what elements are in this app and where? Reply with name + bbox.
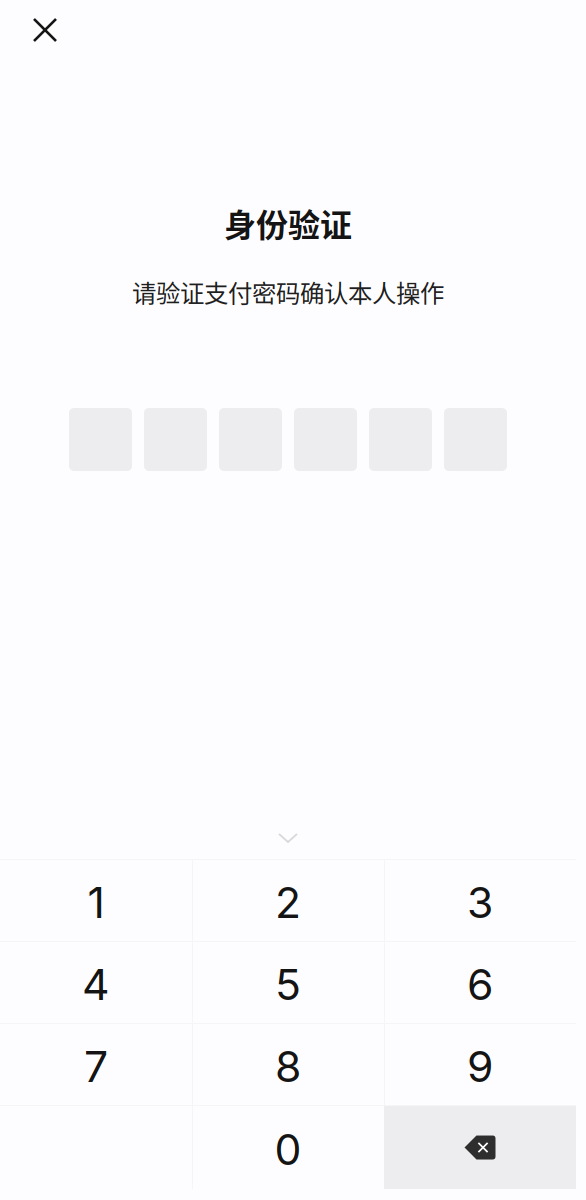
button[interactable]: 6	[384, 942, 576, 1023]
button[interactable]: 7	[0, 1024, 192, 1105]
staticText: 身份验证	[224, 200, 352, 246]
staticText: 5	[275, 959, 301, 1010]
staticText: 6	[467, 959, 493, 1010]
staticText: 1	[87, 877, 104, 928]
button[interactable]: 9	[384, 1024, 576, 1105]
button[interactable]: 3	[384, 860, 576, 941]
button[interactable]: 1	[0, 860, 192, 941]
button[interactable]: 0	[192, 1106, 384, 1189]
button[interactable]: 2	[192, 860, 384, 941]
staticText: 7	[84, 1041, 108, 1092]
staticText: 请验证支付密码确认本人操作	[132, 274, 444, 309]
button[interactable]: Delete	[384, 1106, 576, 1189]
staticText: 9	[467, 1041, 493, 1092]
button[interactable]: 4	[0, 942, 192, 1023]
staticText: 3	[467, 877, 493, 928]
button[interactable]: 5	[192, 942, 384, 1023]
button[interactable]: 8	[192, 1024, 384, 1105]
staticText: 4	[82, 959, 110, 1010]
staticText: 0	[274, 1124, 301, 1175]
staticText: 2	[275, 877, 301, 928]
staticText: 8	[275, 1041, 301, 1092]
button[interactable]: Close	[0, 0, 90, 60]
